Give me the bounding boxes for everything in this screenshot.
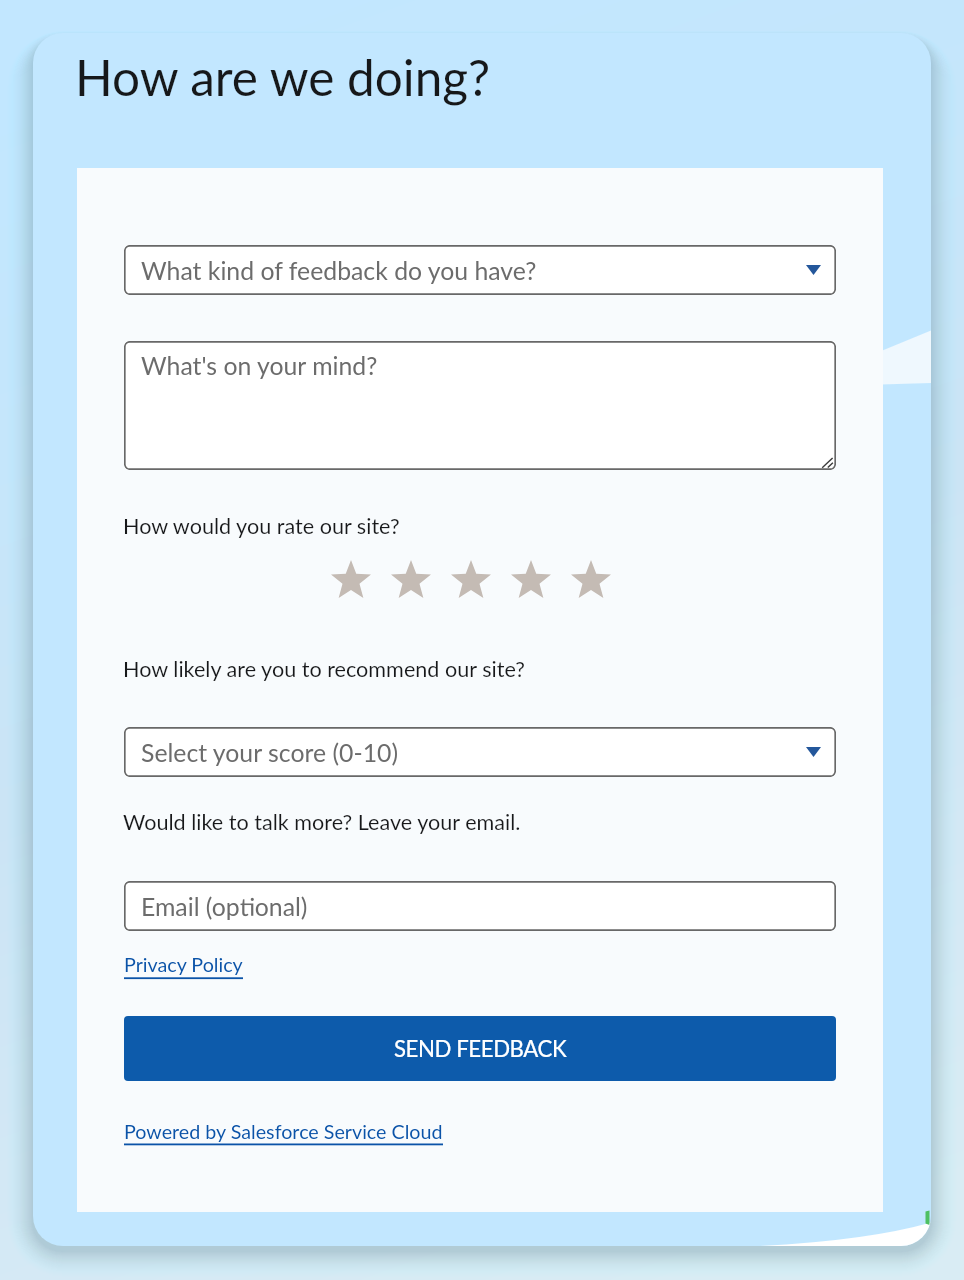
button[interactable]: Rate star <box>441 556 501 602</box>
button[interactable]: Rate star <box>561 556 621 602</box>
staticText: How are we doing? <box>75 47 491 106</box>
button[interactable]: Rate star <box>381 556 441 602</box>
button[interactable]: Powered by Salesforce Service Cloud <box>124 1120 443 1144</box>
staticText: SEND FEEDBACK <box>394 1035 567 1062</box>
button[interactable]: SEND FEEDBACK <box>124 1016 836 1081</box>
button[interactable]: Rate star <box>501 556 561 602</box>
staticText: Privacy Policy <box>124 953 243 977</box>
staticText: Select your score (0-10) <box>141 738 399 768</box>
staticText: How would you rate our site? <box>123 513 400 539</box>
staticText: What kind of feedback do you have? <box>141 256 537 286</box>
staticText: Email (optional) <box>141 892 308 922</box>
button[interactable]: What kind of feedback do you have? <box>124 245 836 295</box>
button[interactable]: Rate star <box>321 556 381 602</box>
other: Open dropdown <box>806 747 821 757</box>
button[interactable]: Privacy Policy <box>124 953 243 977</box>
staticText: Would like to talk more? Leave your emai… <box>123 809 521 835</box>
button[interactable]: What's on your mind? <box>124 341 836 470</box>
button[interactable]: Select your score (0-10) <box>124 727 836 777</box>
button[interactable]: Email (optional) <box>124 881 836 931</box>
staticText: Powered by Salesforce Service Cloud <box>124 1120 443 1144</box>
staticText: What's on your mind? <box>141 351 378 381</box>
other: Open dropdown <box>806 265 821 275</box>
staticText: How likely are you to recommend our site… <box>123 656 525 682</box>
